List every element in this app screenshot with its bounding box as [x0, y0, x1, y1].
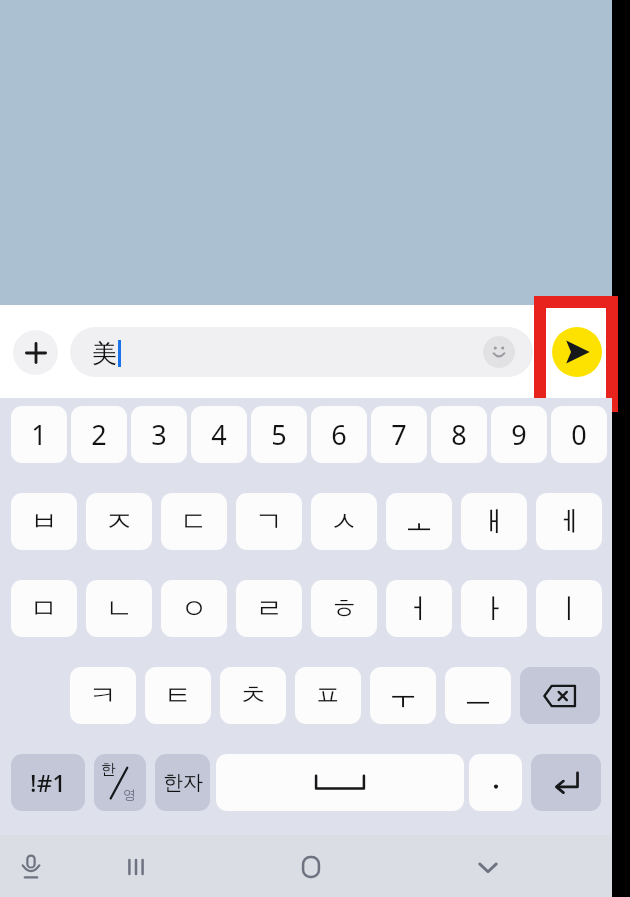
- staticText: ㄹ: [255, 591, 283, 626]
- staticText: ㅏ: [480, 591, 508, 626]
- button[interactable]: ㅁ: [11, 580, 77, 637]
- button[interactable]: 한자: [155, 754, 210, 811]
- button[interactable]: Enter: [531, 754, 601, 811]
- staticText: !#1: [30, 766, 66, 799]
- staticText: ㅗ: [405, 504, 433, 539]
- button[interactable]: ㄹ: [236, 580, 302, 637]
- staticText: ㅣ: [555, 591, 583, 626]
- button[interactable]: ㅍ: [295, 667, 361, 724]
- button[interactable]: Period: [469, 754, 522, 811]
- staticText: 7: [391, 416, 407, 453]
- button[interactable]: 2: [71, 406, 127, 463]
- staticText: 8: [451, 416, 467, 453]
- staticText: ㅁ: [30, 591, 58, 626]
- staticText: ㅋ: [89, 678, 117, 713]
- button[interactable]: ㅌ: [145, 667, 211, 724]
- staticText: ㄷ: [180, 504, 208, 539]
- button[interactable]: 美: [70, 327, 533, 377]
- staticText: ㄱ: [255, 504, 283, 539]
- button[interactable]: ㅊ: [220, 667, 286, 724]
- staticText: ㅔ: [555, 504, 583, 539]
- staticText: 9: [511, 416, 527, 453]
- button[interactable]: 5: [251, 406, 307, 463]
- staticText: ㅜ: [389, 678, 417, 713]
- button[interactable]: 0: [551, 406, 607, 463]
- button[interactable]: 6: [311, 406, 367, 463]
- button[interactable]: Emoji: [483, 336, 515, 368]
- staticText: 3: [151, 416, 167, 453]
- button[interactable]: ㅎ: [311, 580, 377, 637]
- staticText: ㅊ: [239, 678, 267, 713]
- staticText: ㅇ: [180, 591, 208, 626]
- staticText: 영: [123, 786, 136, 802]
- staticText: ㅈ: [105, 504, 133, 539]
- button[interactable]: 8: [431, 406, 487, 463]
- button[interactable]: Recent apps: [107, 838, 165, 896]
- staticText: ㅍ: [314, 678, 342, 713]
- button[interactable]: 1: [11, 406, 67, 463]
- staticText: ㅂ: [30, 504, 58, 539]
- button[interactable]: ㅡ: [445, 667, 511, 724]
- staticText: ㅓ: [405, 591, 433, 626]
- staticText: 美: [92, 338, 117, 369]
- button[interactable]: ㅗ: [386, 493, 452, 550]
- button[interactable]: Voice input: [2, 838, 60, 896]
- button[interactable]: ㅐ: [461, 493, 527, 550]
- staticText: 6: [331, 416, 347, 453]
- button[interactable]: Backspace: [520, 667, 600, 724]
- button[interactable]: ㄴ: [86, 580, 152, 637]
- button[interactable]: ㅣ: [536, 580, 602, 637]
- button[interactable]: !#1: [11, 754, 85, 811]
- button[interactable]: Korean English toggle: [94, 754, 146, 811]
- staticText: 2: [91, 416, 107, 453]
- button[interactable]: ㅜ: [370, 667, 436, 724]
- button[interactable]: ㅋ: [70, 667, 136, 724]
- button[interactable]: 4: [191, 406, 247, 463]
- button[interactable]: 3: [131, 406, 187, 463]
- staticText: 5: [271, 416, 287, 453]
- staticText: 1: [31, 416, 47, 453]
- button[interactable]: ㅓ: [386, 580, 452, 637]
- button[interactable]: ㅂ: [11, 493, 77, 550]
- button[interactable]: Send: [552, 327, 602, 377]
- staticText: ㄴ: [105, 591, 133, 626]
- staticText: ㅅ: [330, 504, 358, 539]
- button[interactable]: 7: [371, 406, 427, 463]
- staticText: 4: [211, 416, 227, 453]
- button[interactable]: ㅔ: [536, 493, 602, 550]
- button[interactable]: ㅅ: [311, 493, 377, 550]
- button[interactable]: ㅏ: [461, 580, 527, 637]
- staticText: ㅐ: [480, 504, 508, 539]
- button[interactable]: Space: [216, 754, 464, 811]
- staticText: 한: [101, 760, 116, 779]
- staticText: 0: [571, 416, 587, 453]
- staticText: ㅌ: [164, 678, 192, 713]
- button[interactable]: ㅇ: [161, 580, 227, 637]
- button[interactable]: Home: [282, 838, 340, 896]
- button[interactable]: ㄷ: [161, 493, 227, 550]
- button[interactable]: 9: [491, 406, 547, 463]
- button[interactable]: ㄱ: [236, 493, 302, 550]
- staticText: ㅡ: [464, 678, 492, 713]
- button[interactable]: Add attachment: [13, 330, 58, 375]
- staticText: ㅎ: [330, 591, 358, 626]
- button[interactable]: Hide keyboard: [459, 838, 517, 896]
- button[interactable]: ㅈ: [86, 493, 152, 550]
- staticText: 한자: [163, 770, 203, 795]
